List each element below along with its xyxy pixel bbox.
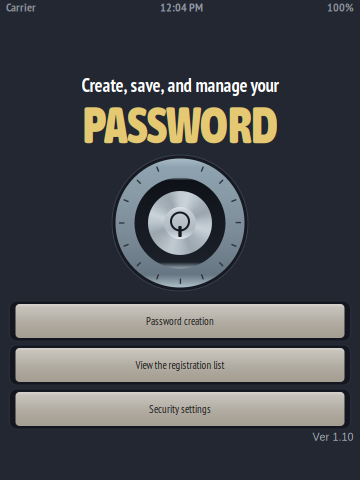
button[interactable]: View the registration list <box>0 343 360 387</box>
button[interactable]: Password creation <box>0 299 360 343</box>
staticText: Create, save, and manage your <box>81 73 278 97</box>
staticText: Password creation <box>146 314 214 328</box>
staticText: Security settings <box>149 402 211 416</box>
staticText: 12:04 PM <box>160 0 203 15</box>
staticText: Ver 1.10 <box>312 431 353 443</box>
staticText: Carrier <box>6 0 36 15</box>
button[interactable]: Security settings <box>0 387 360 431</box>
staticText: View the registration list <box>135 358 224 372</box>
staticText: PASSWORD <box>75 96 284 154</box>
staticText: 100% <box>327 0 354 15</box>
